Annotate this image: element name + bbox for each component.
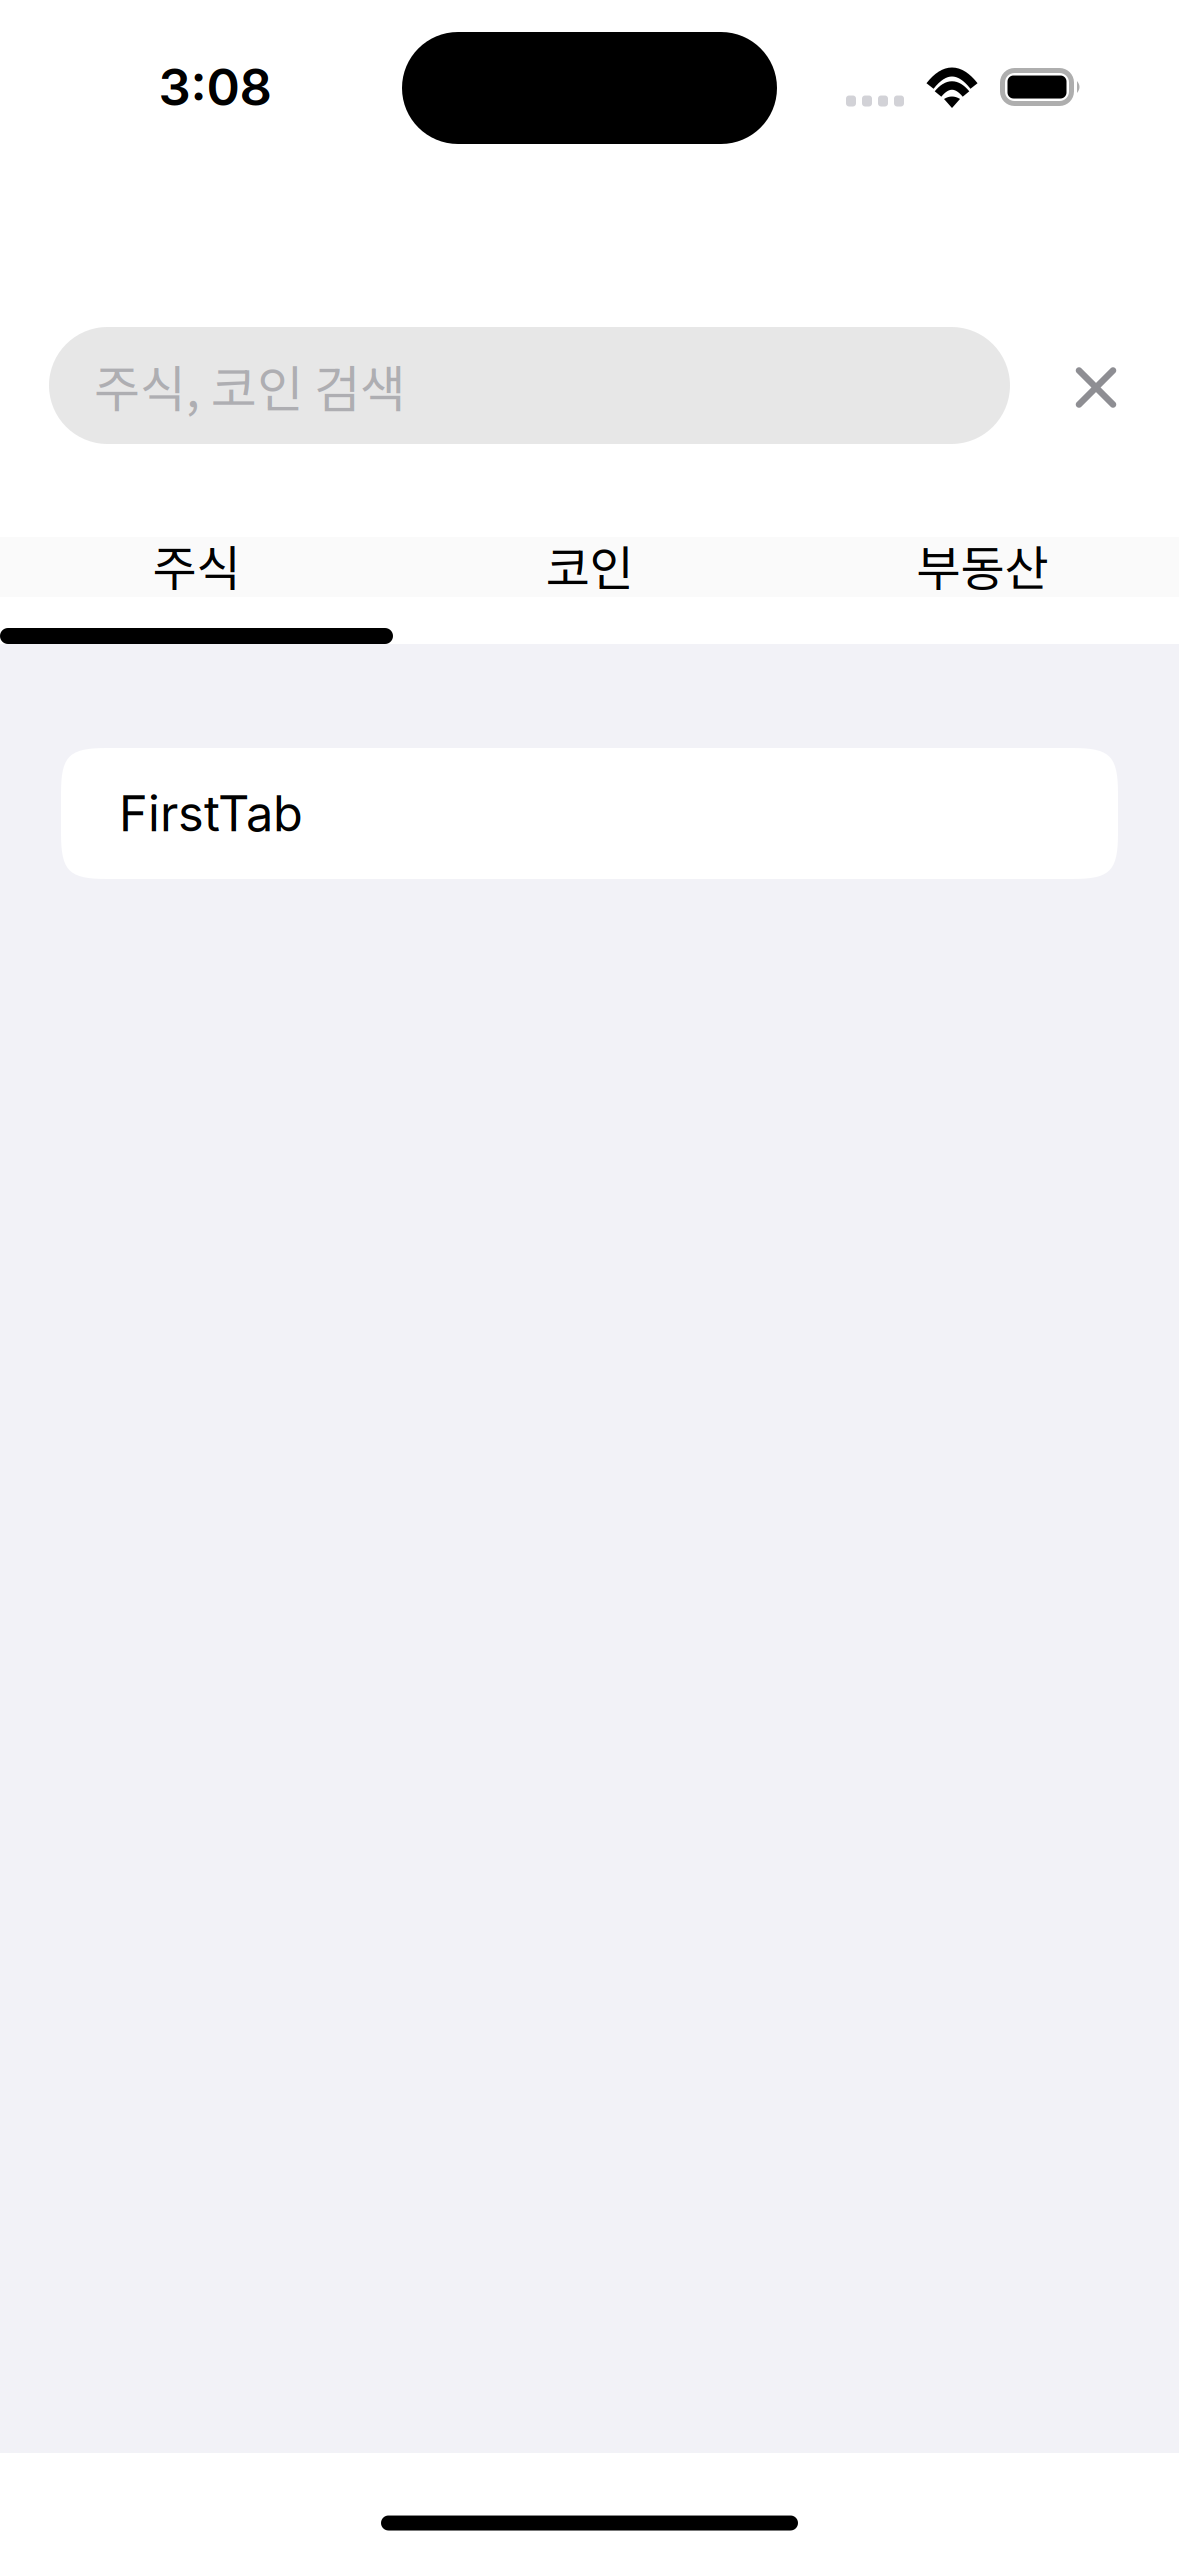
staticText: 주식 <box>152 530 240 600</box>
staticText: FirstTab <box>119 784 303 843</box>
button[interactable]: 코인 <box>393 537 786 597</box>
button[interactable]: 부동산 <box>786 537 1179 597</box>
staticText: 3:08 <box>158 56 271 118</box>
button[interactable]: 주식, 코인 검색 <box>49 327 1010 444</box>
button[interactable]: 주식 <box>0 537 393 597</box>
staticText: 부동산 <box>916 530 1048 600</box>
staticText: 주식, 코인 검색 <box>94 349 406 422</box>
button[interactable]: Clear search <box>1036 327 1156 444</box>
staticText: 코인 <box>545 530 633 600</box>
button[interactable]: FirstTab <box>61 748 1118 879</box>
